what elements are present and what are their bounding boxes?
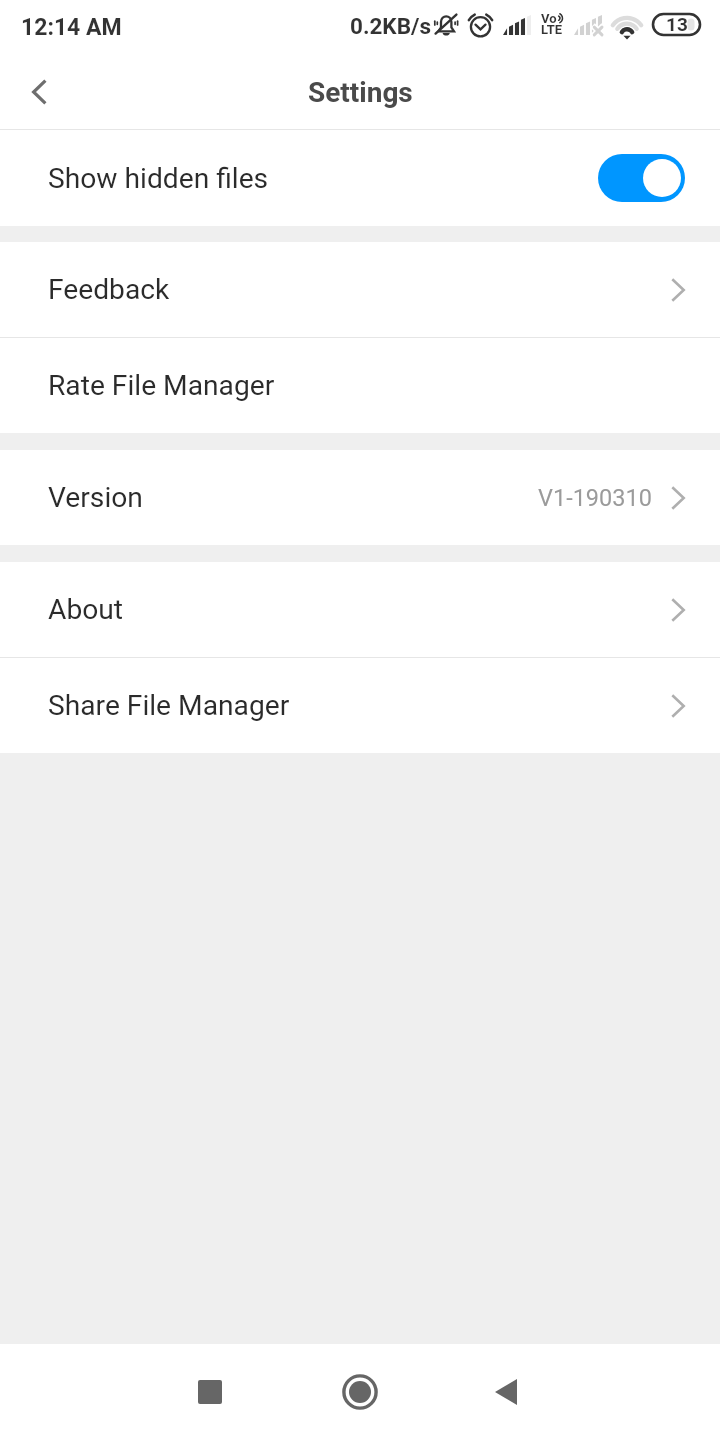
- staticText: Share File Manager: [48, 689, 290, 722]
- staticText: Feedback: [48, 273, 170, 306]
- button[interactable]: Back: [458, 1344, 554, 1440]
- staticText: 13: [666, 13, 688, 35]
- button[interactable]: Show hidden files toggle, on: [598, 154, 685, 202]
- button[interactable]: Rate File Manager: [0, 338, 720, 433]
- button[interactable]: Home: [312, 1344, 408, 1440]
- button[interactable]: Recent apps: [162, 1344, 258, 1440]
- staticText: Settings: [308, 76, 413, 109]
- staticText: Vo: [541, 11, 557, 26]
- staticText: V1-190310: [538, 484, 652, 512]
- staticText: 12:14 AM: [21, 14, 122, 41]
- staticText: LTE: [541, 22, 563, 37]
- button[interactable]: Feedback: [0, 242, 720, 337]
- staticText: Rate File Manager: [48, 369, 275, 402]
- button[interactable]: Share File Manager: [0, 658, 720, 753]
- staticText: Show hidden files: [48, 162, 269, 195]
- button[interactable]: Back: [0, 55, 78, 129]
- staticText: Version: [48, 481, 143, 514]
- button[interactable]: Version: [0, 450, 720, 545]
- staticText: About: [48, 593, 124, 626]
- button[interactable]: Show hidden files: [0, 130, 720, 226]
- button[interactable]: About: [0, 562, 720, 657]
- staticText: 0.2KB/s: [350, 13, 432, 39]
